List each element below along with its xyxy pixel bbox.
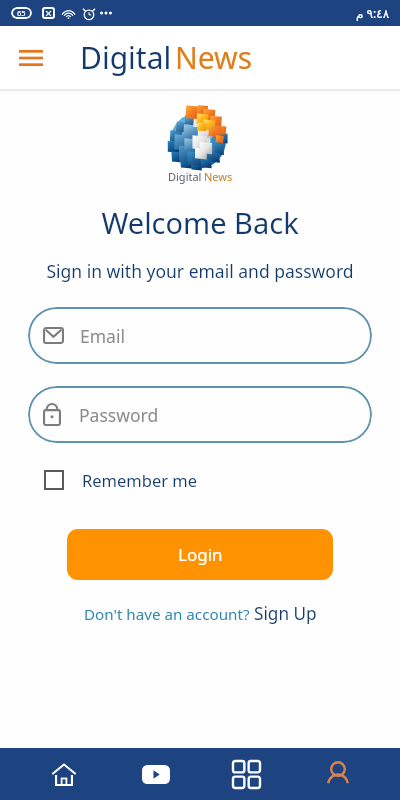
- staticText: News: [204, 169, 233, 184]
- button[interactable]: Categories: [201, 748, 292, 800]
- button[interactable]: Don't have an account?: [84, 602, 317, 625]
- button[interactable]: Login: [67, 529, 333, 580]
- button[interactable]: Menu: [11, 38, 51, 78]
- staticText: Sign in with your email and password: [0, 259, 400, 283]
- staticText: News: [175, 37, 253, 78]
- button[interactable]: Email: [28, 307, 372, 364]
- staticText: Password: [79, 403, 159, 427]
- staticText: 65: [17, 8, 26, 18]
- staticText: Welcome Back: [0, 203, 400, 242]
- button[interactable]: Profile: [292, 748, 383, 800]
- button[interactable]: Remember me: [44, 469, 198, 491]
- button[interactable]: Videos: [110, 748, 201, 800]
- staticText: Remember me: [82, 469, 198, 491]
- button[interactable]: Home: [18, 748, 110, 800]
- button[interactable]: Password: [28, 386, 372, 443]
- staticText: ٩:٤٨ م: [356, 5, 390, 21]
- staticText: Digital: [80, 37, 172, 78]
- staticText: Don't have an account?: [84, 604, 254, 625]
- staticText: Email: [80, 324, 125, 348]
- staticText: Login: [178, 543, 223, 566]
- staticText: Sign Up: [254, 602, 317, 625]
- staticText: Digital: [168, 169, 202, 184]
